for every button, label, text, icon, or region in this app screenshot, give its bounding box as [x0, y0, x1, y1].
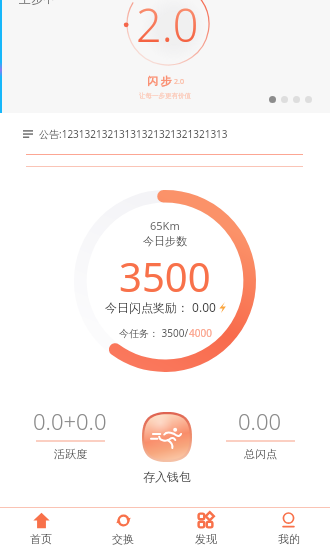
staticText: 0.00 [238, 406, 282, 436]
staticText: 活跃度 [54, 447, 87, 461]
button[interactable]: 0.00 [207, 406, 313, 461]
staticText: 总闪点 [244, 447, 277, 461]
button[interactable]: 公告:12313213213131321321321321313 [0, 113, 330, 155]
button[interactable]: 首页 [0, 508, 82, 550]
staticText: 发现 [195, 532, 217, 546]
staticText: 2.0 [174, 77, 184, 87]
staticText: 65Km [150, 218, 180, 233]
staticText: 公告:12313213213131321321321321313 [39, 127, 228, 141]
staticText: 2.0 [136, 0, 199, 55]
button[interactable]: 0.0+0.0 [17, 406, 123, 461]
staticText: 我的 [278, 532, 300, 546]
staticText: 上步中 [19, 0, 55, 6]
staticText: 0.0+0.0 [33, 406, 107, 436]
staticText: 首页 [30, 532, 52, 546]
button[interactable]: 上步中 [0, 0, 330, 113]
staticText: 3500 [119, 249, 211, 303]
staticText: 闪 步 [147, 73, 172, 88]
staticText: 4000 [189, 326, 212, 340]
staticText: 存入钱包 [143, 469, 191, 484]
staticText: 今日步数 [143, 234, 187, 248]
staticText: 交换 [112, 532, 134, 546]
button[interactable]: 交换 [82, 508, 164, 550]
staticText: 让每一步更有价值 [139, 92, 191, 100]
button[interactable]: 存入钱包 [142, 412, 192, 462]
button[interactable]: 我的 [247, 508, 330, 550]
staticText: 今任务： 3500/ [119, 326, 189, 340]
button[interactable]: 发现 [164, 508, 247, 550]
staticText: 今日闪点奖励： 0.00 [105, 299, 216, 315]
